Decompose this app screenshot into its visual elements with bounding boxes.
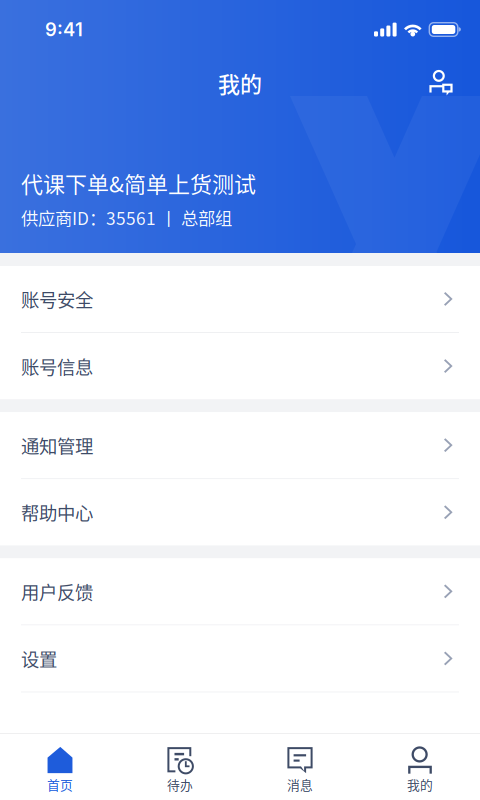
staticText: 消息: [287, 775, 313, 794]
button[interactable]: 用户反馈: [0, 558, 480, 624]
staticText: 首页: [47, 775, 73, 794]
staticText: 用户反馈: [21, 578, 93, 605]
staticText: 供应商ID：35561 丨 总部组: [21, 205, 232, 230]
staticText: 我的: [407, 775, 433, 794]
button[interactable]: 通知管理: [0, 412, 480, 478]
button[interactable]: 账号信息: [0, 333, 480, 399]
button[interactable]: 客服: [418, 60, 464, 106]
staticText: 代课下单&简单上货测试: [21, 167, 256, 199]
staticText: 设置: [21, 645, 57, 672]
staticText: 帮助中心: [21, 499, 93, 526]
staticText: 待办: [167, 775, 193, 794]
button[interactable]: 帮助中心: [0, 479, 480, 545]
staticText: 通知管理: [21, 432, 93, 458]
staticText: 账号信息: [21, 353, 93, 379]
staticText: 9:41: [45, 18, 83, 41]
button[interactable]: 首页: [0, 734, 120, 800]
button[interactable]: 消息: [240, 734, 360, 800]
button[interactable]: 设置: [0, 625, 480, 692]
button[interactable]: 账号安全: [0, 266, 480, 332]
button[interactable]: 我的: [360, 734, 480, 800]
button[interactable]: 待办: [120, 734, 240, 800]
staticText: 我的: [218, 67, 262, 99]
staticText: 账号安全: [21, 286, 93, 312]
